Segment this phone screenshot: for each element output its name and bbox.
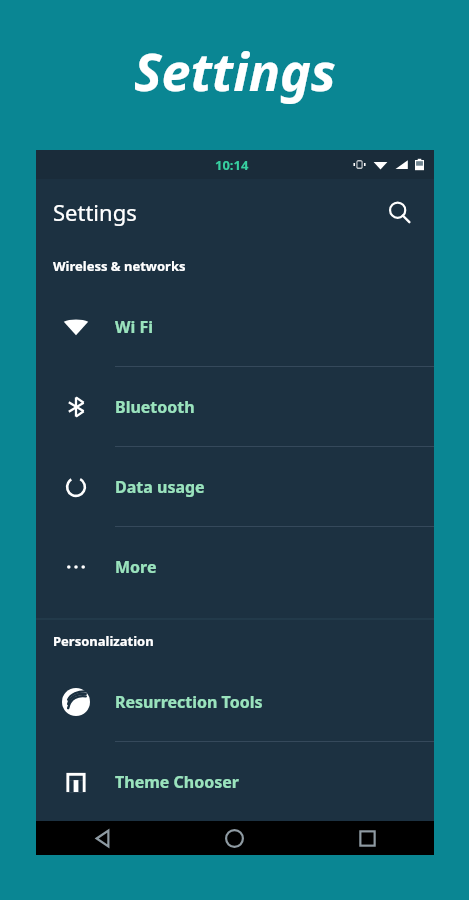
button[interactable]: Data usage bbox=[36, 446, 434, 526]
button[interactable]: Back bbox=[36, 821, 168, 855]
button[interactable]: Resurrection Tools bbox=[36, 662, 434, 741]
staticText: Personalization bbox=[53, 632, 154, 650]
staticText: Theme Chooser bbox=[115, 771, 239, 793]
button[interactable]: Home bbox=[168, 821, 301, 855]
button[interactable]: Wi Fi bbox=[36, 287, 434, 366]
staticText: Settings bbox=[53, 197, 137, 227]
staticText: More bbox=[115, 556, 157, 578]
staticText: Data usage bbox=[115, 476, 205, 498]
staticText: Wireless & networks bbox=[53, 257, 186, 275]
button[interactable]: Bluetooth bbox=[36, 366, 434, 446]
button[interactable]: Theme Chooser bbox=[36, 741, 434, 821]
button[interactable]: More bbox=[36, 526, 434, 606]
staticText: Bluetooth bbox=[115, 396, 195, 418]
staticText: Resurrection Tools bbox=[115, 691, 263, 713]
staticText: Wi Fi bbox=[115, 316, 153, 338]
button[interactable]: Recents bbox=[301, 821, 434, 855]
staticText: Settings bbox=[134, 35, 336, 106]
button[interactable]: Search bbox=[376, 189, 422, 235]
staticText: 10:14 bbox=[215, 156, 249, 174]
